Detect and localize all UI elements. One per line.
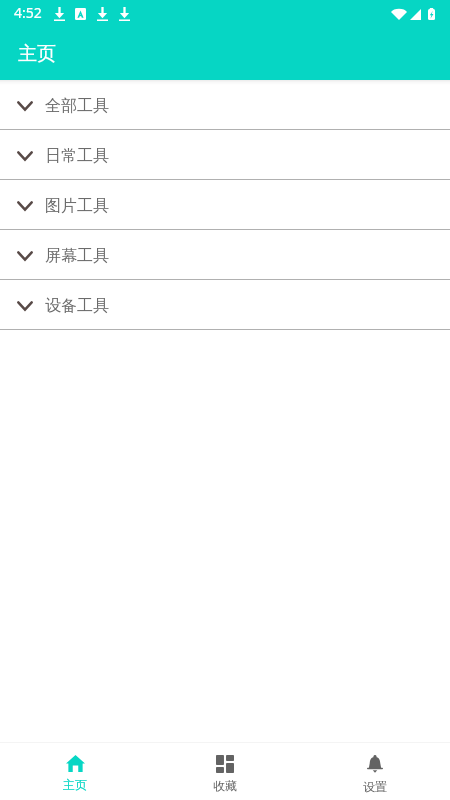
button[interactable]: Settings — [300, 743, 450, 800]
button[interactable]: 设备工具 — [0, 280, 450, 329]
button[interactable]: Favorites — [150, 743, 300, 800]
button[interactable]: Home — [0, 743, 150, 800]
other: Home — [66, 755, 85, 772]
button[interactable]: 全部工具 — [0, 80, 450, 129]
button[interactable]: 屏幕工具 — [0, 230, 450, 279]
other: Favorites — [216, 755, 234, 773]
button[interactable]: 日常工具 — [0, 130, 450, 179]
button[interactable]: 图片工具 — [0, 180, 450, 229]
staticText: 主页 — [18, 42, 56, 66]
staticText: 日常工具 — [45, 146, 109, 166]
staticText: 设备工具 — [45, 296, 109, 316]
staticText: 主页 — [63, 777, 87, 792]
staticText: 设置 — [363, 779, 387, 794]
staticText: 屏幕工具 — [45, 246, 109, 266]
staticText: 图片工具 — [45, 196, 109, 216]
staticText: 收藏 — [213, 778, 237, 793]
staticText: 全部工具 — [45, 96, 109, 116]
staticText: 4:52 — [14, 3, 42, 22]
other: Settings — [367, 755, 383, 774]
